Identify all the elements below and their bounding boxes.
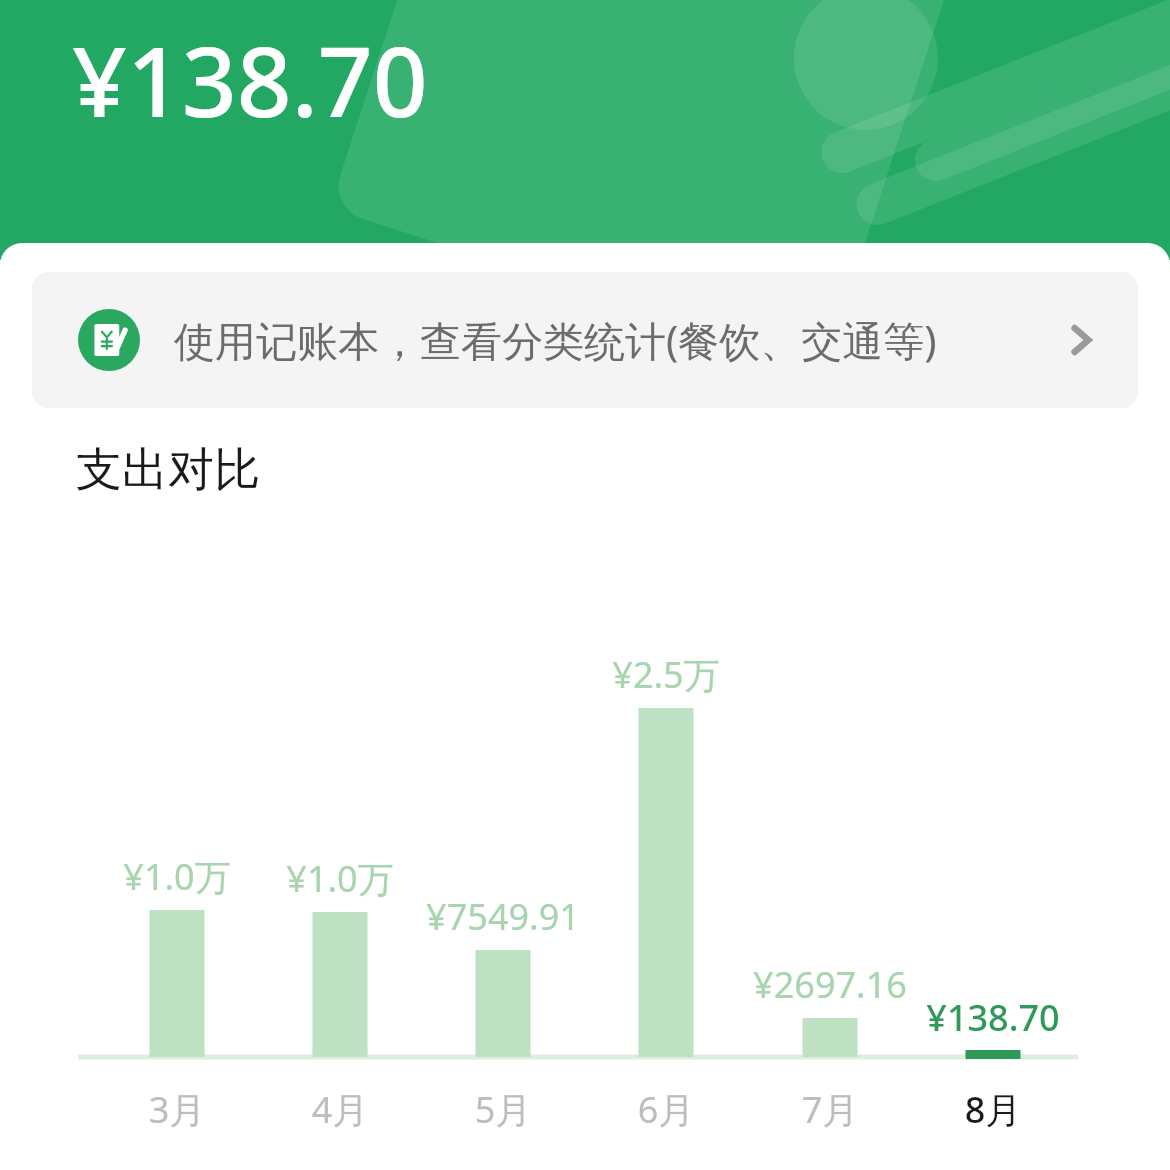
staticText: 4月: [210, 1085, 470, 1134]
button[interactable]: 使用记账本，查看分类统计(餐饮、交通等): [32, 272, 1138, 408]
staticText: ¥138.70: [863, 993, 1123, 1042]
staticText: 支出对比: [76, 441, 260, 499]
staticText: 5月: [373, 1085, 633, 1134]
staticText: ¥1.0万: [47, 852, 307, 901]
staticText: 使用记账本，查看分类统计(餐饮、交通等): [174, 312, 937, 368]
staticText: ¥2.5万: [536, 650, 796, 699]
staticText: 6月: [536, 1085, 796, 1134]
staticText: 7月: [700, 1085, 960, 1134]
staticText: ¥2697.16: [700, 960, 960, 1009]
other: 查看详情: [1058, 317, 1104, 363]
staticText: ¥138.70: [72, 14, 428, 145]
staticText: 8月: [863, 1085, 1123, 1134]
staticText: ¥7549.91: [373, 892, 633, 941]
staticText: ¥1.0万: [210, 854, 470, 903]
staticText: 3月: [47, 1085, 307, 1134]
